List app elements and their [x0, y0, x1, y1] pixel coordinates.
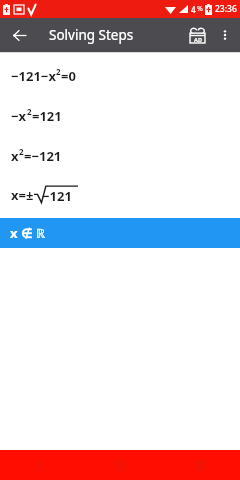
button[interactable]: More options — [212, 22, 238, 48]
staticText: 4 — [191, 4, 196, 15]
button[interactable]: Back — [6, 22, 32, 48]
staticText: x=± — [11, 186, 34, 204]
button[interactable]: Watch ad — [182, 20, 212, 50]
staticText: AD — [194, 36, 202, 43]
staticText: =121 — [32, 107, 62, 125]
staticText: x ∉ ℝ — [10, 224, 46, 242]
staticText: 23:36 — [215, 3, 237, 15]
button[interactable]: x ∉ ℝ — [0, 218, 240, 248]
staticText: % — [197, 4, 203, 14]
staticText: =0 — [61, 67, 76, 85]
staticText: −x — [11, 107, 27, 125]
staticText: =−121 — [24, 147, 62, 165]
staticText: x — [11, 147, 19, 165]
staticText: −121−x — [11, 67, 56, 85]
staticText: 2 — [27, 106, 32, 117]
staticText: 2 — [19, 146, 24, 157]
staticText: Solving Steps — [49, 26, 134, 44]
staticText: −121 — [42, 187, 72, 205]
staticText: 2 — [56, 66, 61, 77]
